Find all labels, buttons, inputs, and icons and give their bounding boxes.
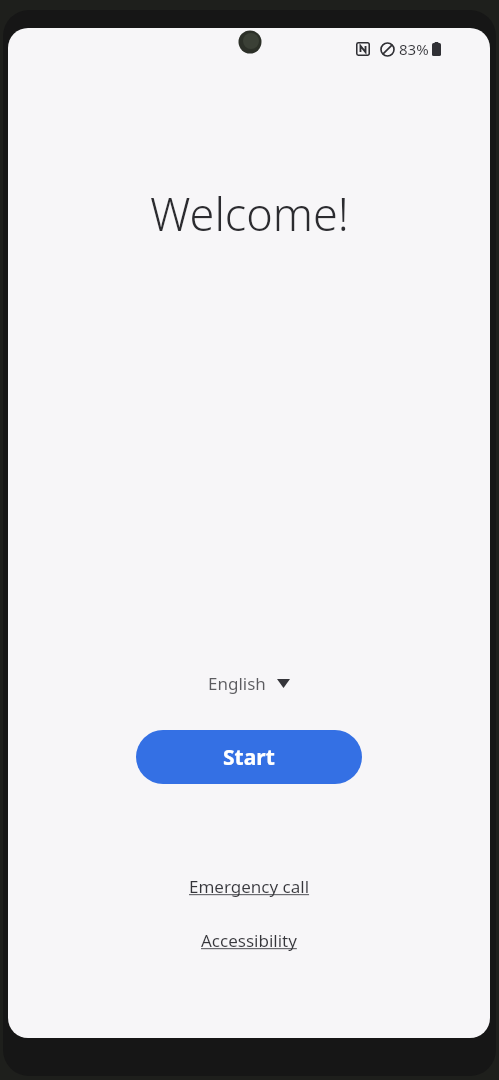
staticText: Welcome! xyxy=(150,183,349,244)
staticText: English xyxy=(208,672,266,695)
staticText: Emergency call xyxy=(189,875,310,898)
button[interactable]: Start xyxy=(136,730,362,784)
staticText: 83% xyxy=(399,39,429,59)
button[interactable]: Accessibility xyxy=(191,924,307,957)
button[interactable]: English xyxy=(200,667,298,700)
staticText: Accessibility xyxy=(201,929,297,952)
staticText: Start xyxy=(223,743,275,772)
button[interactable]: Emergency call xyxy=(179,870,320,903)
